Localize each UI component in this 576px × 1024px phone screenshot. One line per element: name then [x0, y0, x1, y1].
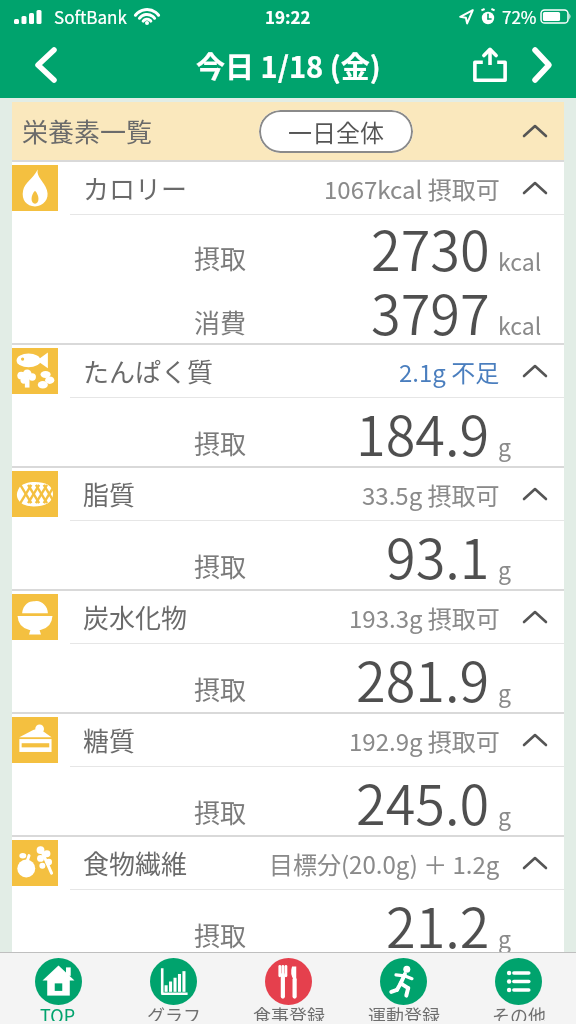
staticText: 目標分(20.0g) ＋ 1.2g — [269, 846, 500, 881]
button[interactable]: 糖質 — [12, 714, 564, 766]
staticText: 72% — [502, 4, 537, 29]
staticText: 184.9 — [356, 393, 490, 461]
button[interactable] — [522, 45, 562, 85]
staticText: 摂取 — [194, 916, 247, 954]
staticText: 摂取 — [194, 239, 247, 277]
staticText: 281.9 — [356, 639, 490, 707]
staticText: 193.3g 摂取可 — [349, 600, 500, 635]
staticText: その他 — [492, 1002, 546, 1021]
button[interactable] — [468, 43, 512, 87]
staticText: TOP — [40, 1002, 76, 1021]
button[interactable]: グラフ — [116, 953, 231, 1024]
staticText: 2730 — [371, 208, 490, 272]
button[interactable]: カロリー — [12, 162, 564, 214]
staticText: 摂取 — [194, 424, 247, 462]
staticText: グラフ — [147, 1002, 201, 1021]
staticText: 食事登録 — [253, 1002, 325, 1021]
staticText: g — [498, 675, 511, 708]
staticText: 3797 — [371, 272, 490, 336]
staticText: SoftBank — [54, 4, 127, 29]
staticText: 2.1g 不足 — [399, 354, 500, 389]
staticText: カロリー — [83, 169, 188, 207]
staticText: 摂取 — [194, 670, 247, 708]
staticText: 摂取 — [194, 547, 247, 585]
staticText: g — [498, 552, 511, 585]
staticText: たんぱく質 — [83, 352, 214, 390]
button[interactable]: 食事登録 — [231, 953, 346, 1024]
button[interactable]: 一日全体 — [259, 110, 413, 153]
button[interactable]: たんぱく質 — [12, 345, 564, 397]
staticText: 食物繊維 — [83, 844, 188, 882]
staticText: kcal — [498, 308, 542, 341]
button[interactable]: 食物繊維 — [12, 837, 564, 889]
staticText: g — [498, 921, 511, 954]
staticText: kcal — [498, 244, 542, 277]
button[interactable]: 炭水化物 — [12, 591, 564, 643]
button[interactable]: 運動登録 — [346, 953, 461, 1024]
staticText: 21.2 — [386, 885, 490, 953]
staticText: 1067kcal 摂取可 — [324, 171, 500, 206]
button[interactable]: 脂質 — [12, 468, 564, 520]
staticText: 192.9g 摂取可 — [349, 723, 500, 758]
staticText: 糖質 — [83, 721, 136, 759]
staticText: 一日全体 — [288, 114, 384, 149]
staticText: 運動登録 — [368, 1002, 440, 1021]
staticText: 93.1 — [386, 516, 490, 584]
staticText: g — [498, 798, 511, 831]
staticText: 19:22 — [265, 4, 311, 29]
staticText: 脂質 — [83, 475, 136, 513]
staticText: g — [498, 429, 511, 462]
staticText: 摂取 — [194, 793, 247, 831]
staticText: 245.0 — [356, 762, 490, 830]
button[interactable]: TOP — [0, 953, 116, 1024]
button[interactable]: その他 — [461, 953, 576, 1024]
button[interactable] — [26, 45, 66, 85]
staticText: 炭水化物 — [83, 598, 188, 636]
staticText: 今日 1/18 (金) — [196, 44, 381, 86]
button[interactable]: 栄養素一覧 — [12, 102, 564, 160]
staticText: 消費 — [194, 303, 247, 341]
staticText: 33.5g 摂取可 — [362, 477, 500, 512]
staticText: 栄養素一覧 — [22, 112, 153, 150]
